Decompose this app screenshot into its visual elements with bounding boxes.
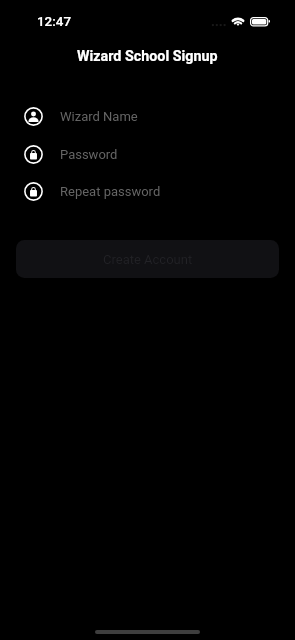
other: Battery [250, 17, 271, 26]
button[interactable]: Repeat password [0, 177, 295, 205]
button[interactable]: Password [0, 140, 295, 168]
staticText: Repeat password [60, 184, 161, 199]
staticText: Create Account [103, 252, 193, 267]
staticText: Password [60, 147, 118, 162]
staticText: Wizard School Signup [77, 48, 218, 65]
button[interactable]: Wizard Name [0, 102, 295, 130]
other: Wi-Fi [230, 16, 246, 28]
staticText: 12:47 [37, 14, 71, 30]
staticText: Wizard Name [60, 109, 138, 124]
other: Cellular signal [210, 21, 227, 29]
